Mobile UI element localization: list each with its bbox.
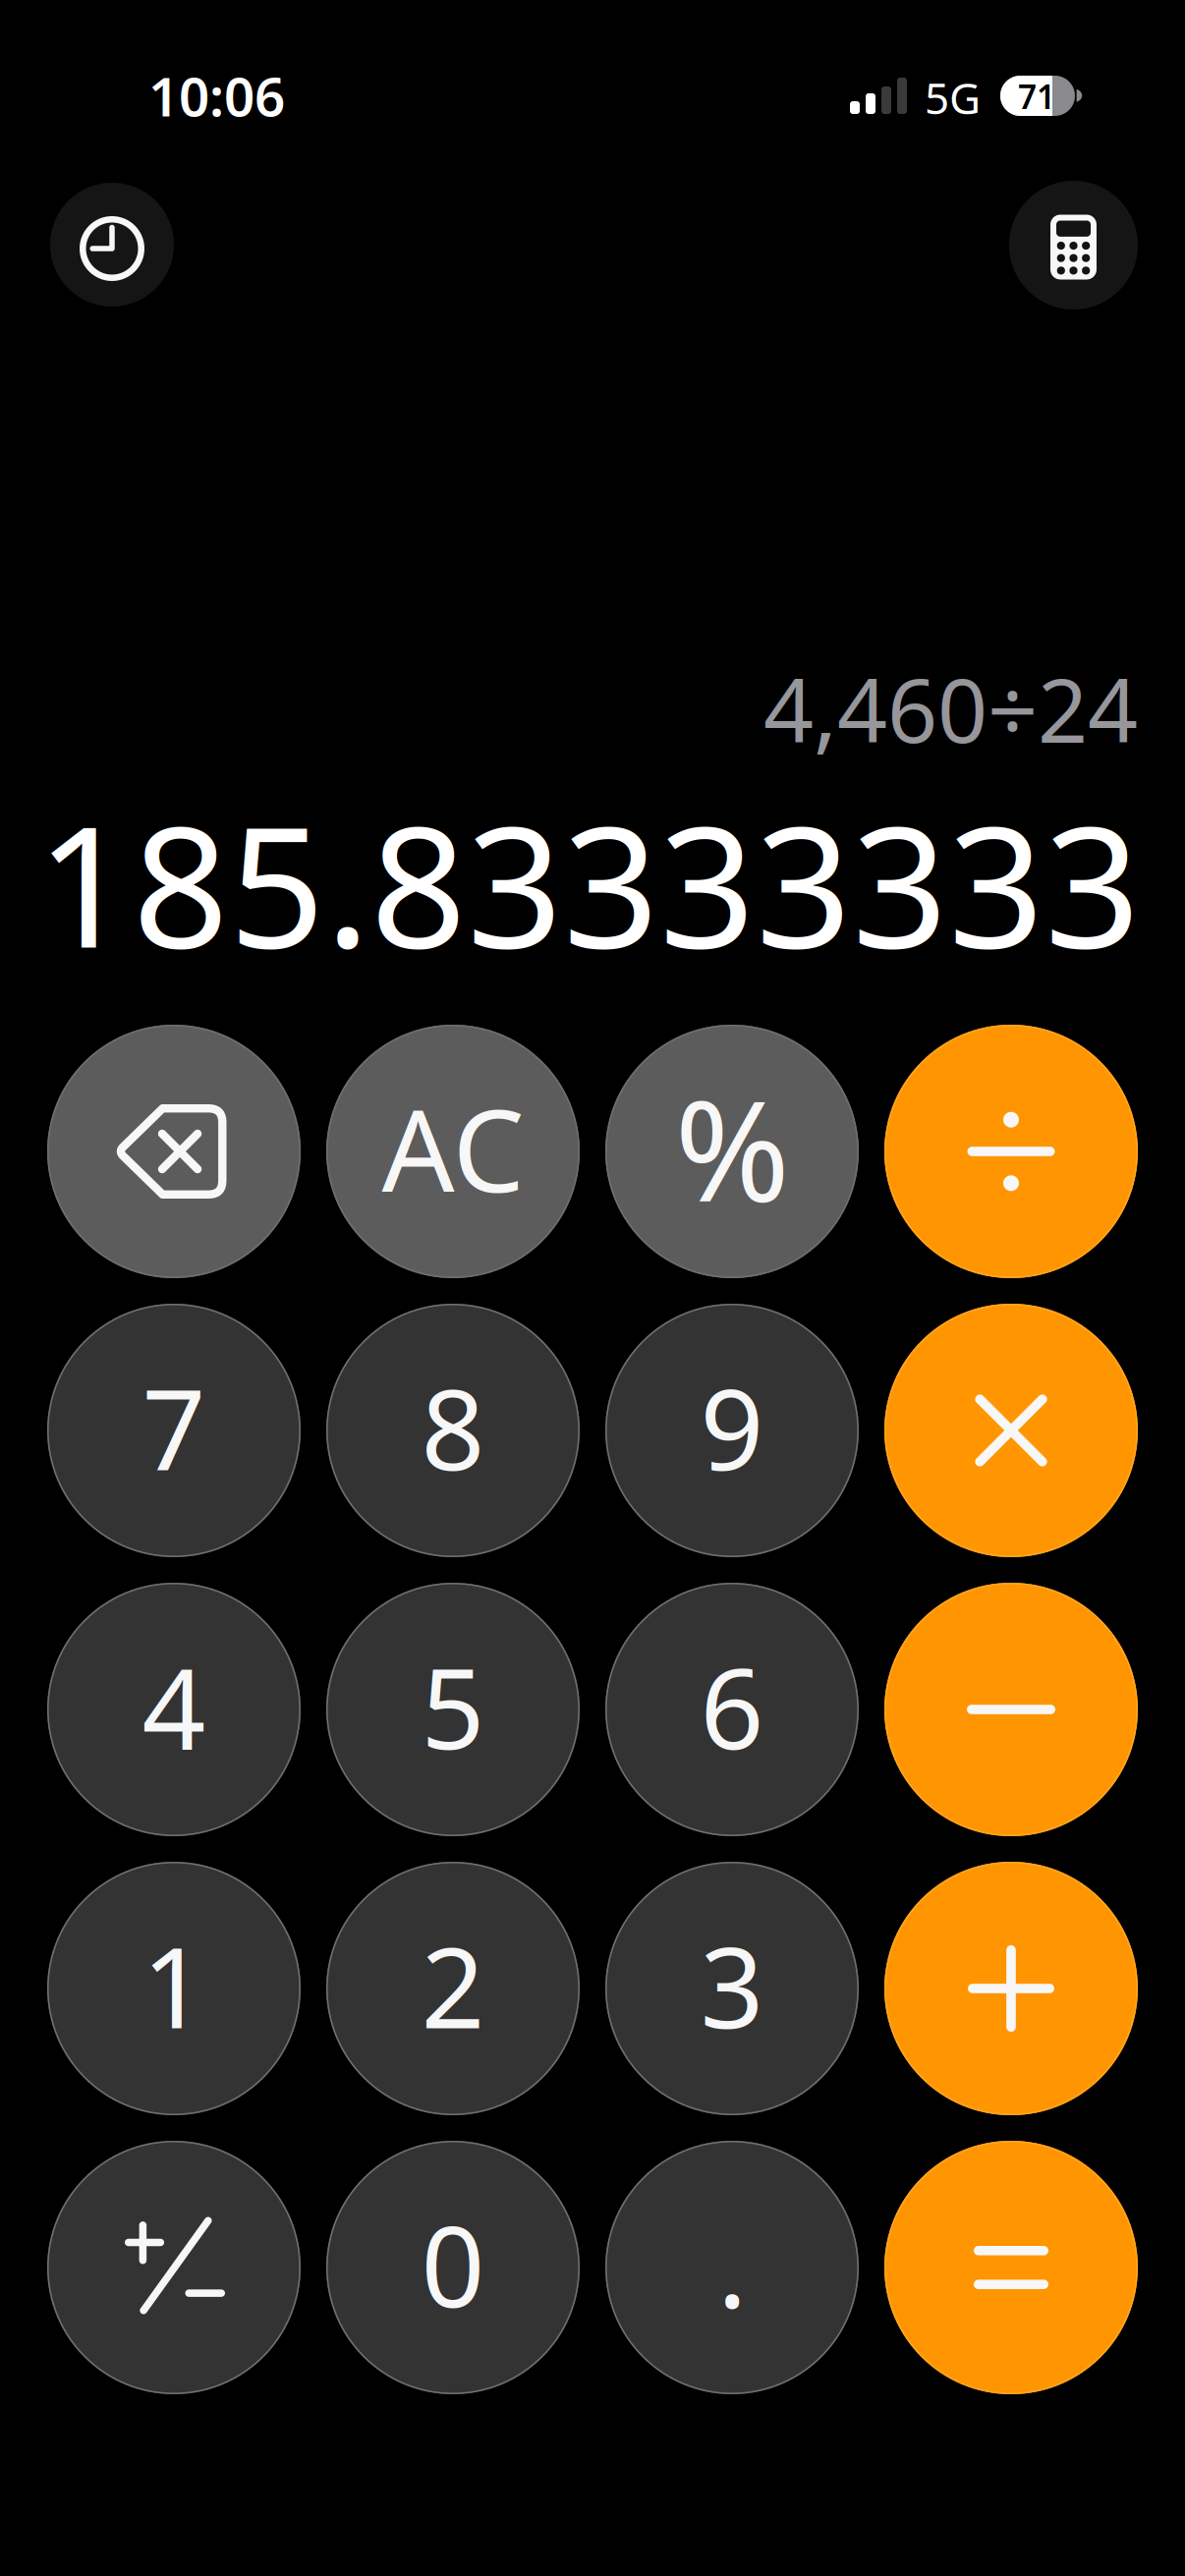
staticText: 10:06 [148,60,285,131]
staticText: 5 [421,1632,485,1780]
staticText: 2 [421,1911,485,2059]
staticText: . [717,2190,747,2338]
button[interactable]: % [605,1025,859,1278]
staticText: 0 [421,2190,485,2338]
button[interactable]: Add [884,1862,1138,2115]
staticText: 71 [1018,75,1055,118]
button[interactable]: 9 [605,1304,859,1557]
button[interactable]: 3 [605,1862,859,2115]
staticText: 7 [142,1353,206,1501]
button[interactable]: Subtract [884,1583,1138,1836]
button[interactable]: 6 [605,1583,859,1836]
staticText: 9 [700,1353,764,1501]
button[interactable]: Calculator [1009,181,1138,309]
button[interactable]: . [605,2141,859,2394]
button[interactable]: History [50,183,174,307]
button[interactable]: 2 [326,1862,580,2115]
button[interactable]: Equals [884,2141,1138,2394]
button[interactable]: Plus minus [47,2141,301,2394]
staticText: 8 [421,1353,485,1501]
staticText: AC [382,1072,524,1224]
button[interactable]: Divide [884,1025,1138,1278]
staticText: 3 [700,1911,764,2059]
button[interactable]: Multiply [884,1304,1138,1557]
staticText: 6 [700,1632,764,1780]
staticText: 5G [925,69,981,126]
staticText: 4,460÷24 [763,650,1138,767]
button[interactable]: 1 [47,1862,301,2115]
button[interactable]: 8 [326,1304,580,1557]
button[interactable]: AC [326,1025,580,1278]
button[interactable]: 4 [47,1583,301,1836]
button[interactable]: 0 [326,2141,580,2394]
staticText: 4 [142,1632,206,1780]
staticText: % [675,1056,790,1240]
button[interactable]: 7 [47,1304,301,1557]
button[interactable]: Delete [47,1025,301,1278]
staticText: 1 [142,1911,206,2059]
button[interactable]: 5 [326,1583,580,1836]
staticText: 185.83333333 [36,771,1141,994]
